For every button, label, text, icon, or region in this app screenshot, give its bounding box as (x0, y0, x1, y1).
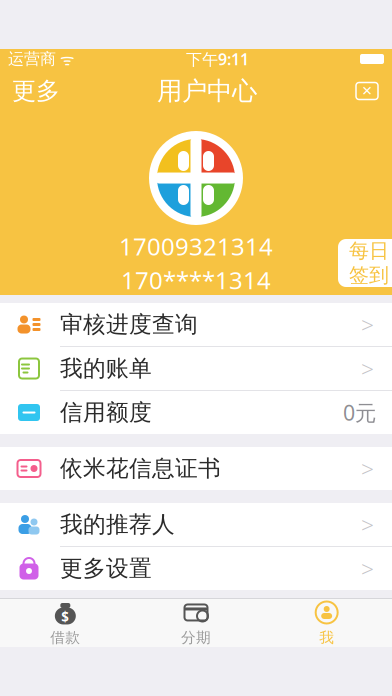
button[interactable]: 更多设置 (0, 547, 392, 590)
staticText: 更多设置 (60, 555, 152, 582)
staticText: 我的推荐人 (60, 511, 175, 538)
staticText: 更多 (12, 76, 60, 106)
staticText: 我的账单 (60, 355, 152, 382)
staticText: 17009321314 (119, 230, 273, 262)
button[interactable]: 我 (261, 599, 392, 647)
staticText: 签到 (349, 263, 389, 288)
staticText: 0元 (343, 398, 376, 427)
staticText: > (361, 509, 374, 539)
button[interactable]: 消息 (342, 69, 392, 113)
button[interactable]: 信用额度 (0, 391, 392, 434)
button[interactable]: 每日 (338, 239, 392, 287)
staticText: 依米花信息证书 (60, 455, 221, 482)
staticText: 运营商 (8, 49, 56, 69)
button[interactable]: 分期 (131, 599, 261, 647)
button[interactable]: 我的账单 (0, 347, 392, 390)
button[interactable]: $ (0, 599, 131, 647)
button[interactable]: 我的推荐人 (0, 503, 392, 546)
staticText: 审核进度查询 (60, 311, 198, 338)
staticText: > (361, 353, 374, 383)
button[interactable]: 审核进度查询 (0, 303, 392, 346)
button[interactable]: 依米花信息证书 (0, 447, 392, 490)
button[interactable]: 更多 (0, 69, 72, 113)
staticText: 我 (319, 628, 334, 646)
staticText: 每日 (349, 238, 389, 263)
staticText: > (361, 553, 374, 583)
staticText: 借款 (50, 628, 80, 646)
staticText: 信用额度 (60, 399, 152, 426)
staticText: 分期 (181, 628, 211, 646)
staticText: 下午9:11 (186, 48, 249, 70)
staticText: $ (61, 608, 69, 625)
staticText: 170****1314 (121, 264, 271, 296)
staticText: > (361, 453, 374, 483)
staticText: ✕ (361, 83, 372, 98)
staticText: 用户中心 (157, 75, 257, 106)
staticText: ᯤ (56, 48, 75, 70)
staticText: > (361, 309, 374, 339)
